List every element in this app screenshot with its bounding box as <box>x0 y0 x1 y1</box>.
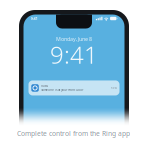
staticText: Monday, June 8 <box>56 35 92 43</box>
staticText: Someone is at your Front Door <box>41 88 83 92</box>
staticText: 9:41 <box>50 39 98 70</box>
staticText: now <box>111 86 117 90</box>
staticText: RING <box>41 84 48 88</box>
staticText: Complete control from the Ring app <box>17 129 130 138</box>
staticText: 9:41 <box>30 16 37 21</box>
button[interactable]: RING <box>28 80 119 95</box>
